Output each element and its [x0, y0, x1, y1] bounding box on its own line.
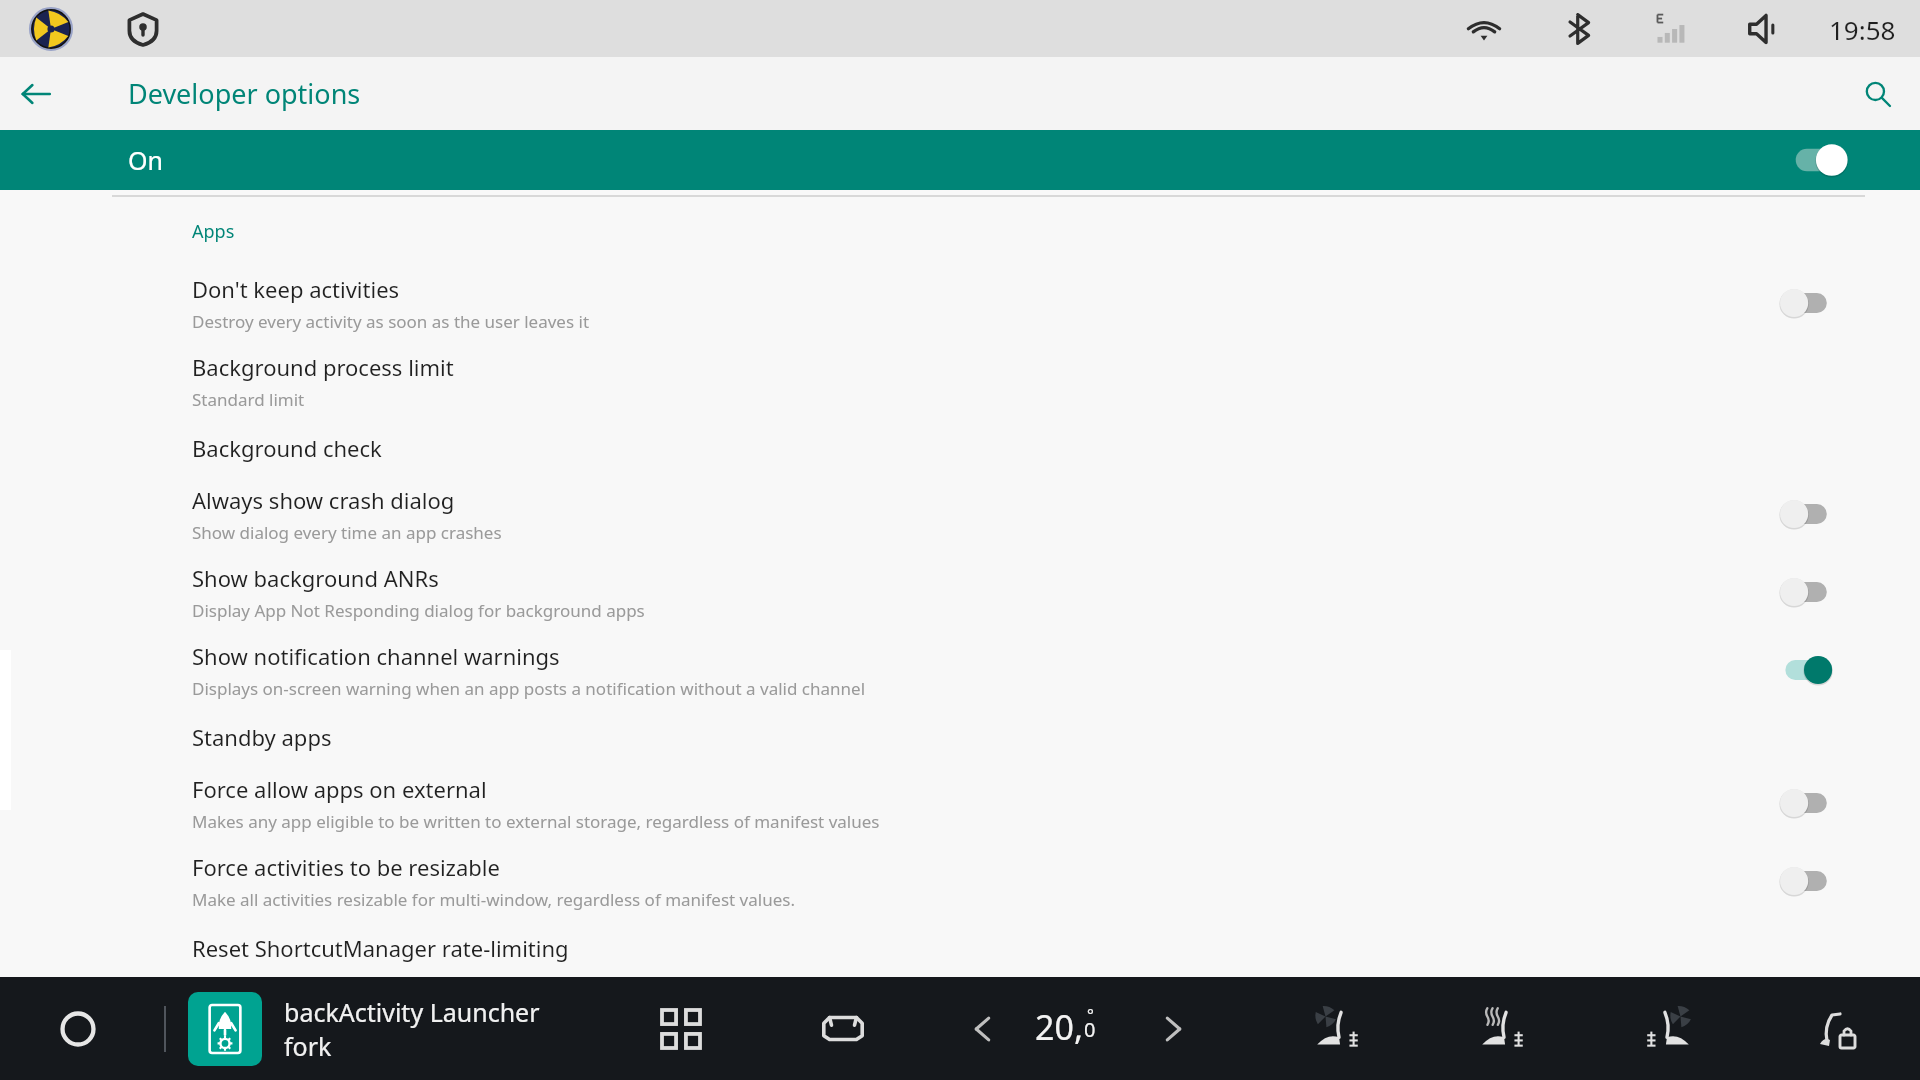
- staticText: Apps: [192, 219, 235, 244]
- staticText: Force allow apps on external: [192, 774, 487, 804]
- button[interactable]: Back: [8, 66, 64, 122]
- button[interactable]: Reset ShortcutManager rate-limiting: [0, 920, 1920, 975]
- button[interactable]: Standby apps: [0, 709, 1920, 764]
- button[interactable]: Increase temperature: [1145, 1001, 1201, 1057]
- staticText: Show background ANRs: [192, 563, 439, 593]
- button[interactable]: Force activities to be resizable: [0, 842, 1920, 920]
- staticText: 20,: [1035, 1004, 1084, 1050]
- staticText: Displays on-screen warning when an app p…: [192, 677, 866, 700]
- button[interactable]: Decrease temperature: [955, 1001, 1011, 1057]
- staticText: Standard limit: [192, 388, 305, 411]
- staticText: Show notification channel warnings: [192, 641, 560, 671]
- staticText: °: [1087, 1004, 1094, 1026]
- staticText: fork: [284, 1029, 332, 1063]
- staticText: Show dialog every time an app crashes: [192, 521, 502, 544]
- button[interactable]: Seat climate 2: [1470, 996, 1536, 1062]
- staticText: Make all activities resizable for multi-…: [192, 888, 795, 911]
- button[interactable]: Child lock: [1804, 996, 1870, 1062]
- staticText: backActivity Launcher: [284, 995, 540, 1029]
- staticText: Developer options: [128, 75, 361, 112]
- button[interactable]: backActivity Launcher: [188, 992, 540, 1066]
- button[interactable]: Search: [1850, 66, 1906, 122]
- button[interactable]: Don't keep activities: [0, 264, 1920, 342]
- staticText: Reset ShortcutManager rate-limiting: [192, 933, 569, 963]
- staticText: Display App Not Responding dialog for ba…: [192, 599, 645, 622]
- staticText: Force activities to be resizable: [192, 852, 500, 882]
- button[interactable]: On: [0, 130, 1920, 190]
- staticText: Always show crash dialog: [192, 485, 455, 515]
- staticText: 0: [1084, 1016, 1096, 1043]
- staticText: Background process limit: [192, 352, 454, 382]
- staticText: Destroy every activity as soon as the us…: [192, 310, 590, 333]
- button[interactable]: Seat climate 1: [1305, 996, 1371, 1062]
- button[interactable]: Seat climate 3: [1635, 996, 1701, 1062]
- staticText: Don't keep activities: [192, 274, 400, 304]
- button[interactable]: Show background ANRs: [0, 553, 1920, 631]
- button[interactable]: Always show crash dialog: [0, 475, 1920, 553]
- staticText: Background check: [192, 433, 382, 463]
- button[interactable]: Show notification channel warnings: [0, 631, 1920, 709]
- staticText: Standby apps: [192, 722, 332, 752]
- button[interactable]: Background process limit: [0, 342, 1920, 420]
- staticText: Makes any app eligible to be written to …: [192, 810, 880, 833]
- button[interactable]: Home: [50, 1001, 106, 1057]
- button[interactable]: Vehicle: [812, 998, 874, 1060]
- staticText: On: [128, 143, 163, 177]
- button[interactable]: Force allow apps on external: [0, 764, 1920, 842]
- staticText: 19:58: [1829, 12, 1896, 47]
- button[interactable]: Apps grid: [650, 998, 712, 1060]
- button[interactable]: Background check: [0, 420, 1920, 475]
